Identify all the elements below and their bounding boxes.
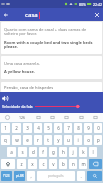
button[interactable]: p (94, 135, 102, 145)
staticText: w (15, 137, 19, 143)
button[interactable]: Settings (79, 115, 84, 120)
staticText: Quarto com cama de casal + duas camas de… (4, 27, 87, 37)
button[interactable]: Space (37, 171, 75, 181)
staticText: Room with a couple bed and two single be… (4, 40, 93, 50)
button[interactable]: 6 (54, 123, 62, 133)
staticText: português (48, 174, 64, 178)
staticText: z (20, 161, 23, 167)
button[interactable]: Search (87, 171, 102, 181)
button[interactable]: n (69, 159, 77, 169)
staticText: a (10, 149, 13, 155)
staticText: c (42, 161, 45, 167)
button[interactable]: Shift (1, 159, 15, 169)
button[interactable]: Back (0, 8, 11, 21)
button[interactable]: x (28, 159, 37, 169)
button[interactable]: y (54, 135, 62, 145)
staticText: casa (25, 11, 38, 19)
button[interactable]: j (69, 147, 77, 157)
staticText: h (62, 149, 65, 155)
button[interactable]: g (49, 147, 57, 157)
staticText: 3 (26, 125, 29, 131)
button[interactable]: Play audio (1, 94, 10, 103)
button[interactable]: Emoji (64, 115, 69, 120)
staticText: Pensão, casa de hóspedes (4, 85, 54, 90)
staticText: 7 (67, 125, 70, 131)
staticText: Velocidade da fala (2, 104, 33, 109)
button[interactable]: s (18, 147, 27, 157)
staticText: 9 (87, 125, 90, 131)
button[interactable]: l (89, 147, 97, 157)
staticText: e (26, 137, 29, 143)
button[interactable]: Speech rate (35, 104, 80, 109)
staticText: j (72, 149, 74, 155)
staticText: 6 (57, 125, 60, 131)
staticText: k (82, 149, 85, 155)
staticText: v (52, 161, 55, 167)
staticText: 2 (15, 125, 18, 131)
staticText: q (4, 137, 7, 143)
button[interactable]: Google (5, 115, 10, 120)
staticText: y (57, 137, 60, 143)
button[interactable]: o (84, 135, 92, 145)
staticText: 8 (77, 125, 80, 131)
button[interactable]: Clear (90, 8, 103, 21)
button[interactable]: 0 (94, 123, 102, 133)
button[interactable]: t (44, 135, 52, 145)
button[interactable]: f (39, 147, 47, 157)
staticText: b (62, 161, 65, 167)
button[interactable]: u (64, 135, 72, 145)
button[interactable]: Pensão, casa de hóspedes (1, 82, 102, 92)
staticText: r (37, 137, 39, 143)
button[interactable]: d (29, 147, 37, 157)
button[interactable]: q (1, 135, 10, 145)
button[interactable]: 9 (84, 123, 92, 133)
button[interactable]: 1 (1, 123, 10, 133)
button[interactable]: a (7, 147, 16, 157)
button[interactable]: z (17, 159, 26, 169)
staticText: g (52, 149, 55, 155)
button[interactable]: 2 (12, 123, 21, 133)
button[interactable]: More options (93, 115, 98, 120)
button[interactable]: . (77, 171, 85, 181)
button[interactable]: Uma casa amarela. (1, 56, 102, 79)
staticText: f (42, 149, 44, 155)
button[interactable]: k (79, 147, 87, 157)
staticText: i (77, 137, 79, 143)
staticText: pt-BR (16, 174, 24, 178)
button[interactable]: c (39, 159, 47, 169)
button[interactable]: v (49, 159, 57, 169)
button[interactable]: 7 (64, 123, 72, 133)
staticText: ?123 (3, 174, 10, 178)
button[interactable]: r (34, 135, 42, 145)
button[interactable]: 5 (44, 123, 52, 133)
button[interactable]: h (59, 147, 67, 157)
staticText: u (67, 137, 70, 143)
staticText: , (30, 173, 32, 179)
button[interactable]: 4 (34, 123, 42, 133)
button[interactable]: Change language (14, 171, 25, 181)
staticText: d (32, 149, 35, 155)
button[interactable]: 3 (23, 123, 32, 133)
staticText: l (92, 149, 94, 155)
button[interactable]: Clipboard (50, 115, 55, 120)
button[interactable]: Stickers (36, 115, 41, 120)
staticText: m (81, 161, 86, 167)
staticText: n (72, 161, 75, 167)
button[interactable]: e (23, 135, 32, 145)
staticText: x (31, 161, 34, 167)
button[interactable]: Backspace (89, 159, 102, 169)
staticText: . (80, 173, 82, 179)
staticText: t (47, 137, 49, 143)
button[interactable]: i (74, 135, 82, 145)
button[interactable]: b (59, 159, 67, 169)
button[interactable]: , (27, 171, 35, 181)
staticText: 4 (37, 125, 40, 131)
button[interactable]: m (79, 159, 87, 169)
staticText: s (21, 149, 24, 155)
button[interactable]: 8 (74, 123, 82, 133)
staticText: A yellow house. (4, 69, 35, 74)
button[interactable]: Symbols (1, 171, 12, 181)
staticText: 1 (4, 125, 7, 131)
button[interactable]: w (12, 135, 21, 145)
button[interactable]: Quarto com cama de casal + duas camas de… (1, 22, 102, 54)
